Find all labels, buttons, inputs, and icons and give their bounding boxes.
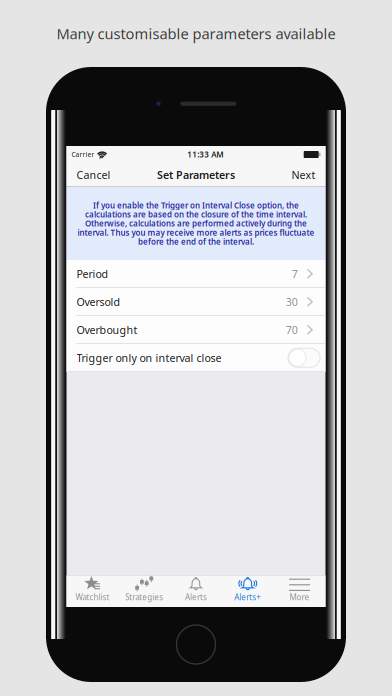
staticText: Watchlist (75, 592, 109, 602)
staticText: Alerts (185, 592, 207, 602)
staticText: 7 (292, 267, 298, 281)
button[interactable]: Next (284, 163, 322, 186)
button[interactable]: Period (66, 260, 325, 288)
staticText: Set Parameters (157, 168, 235, 182)
staticText: Many customisable parameters available (56, 24, 335, 43)
staticText: Overbought (76, 323, 137, 337)
button[interactable]: Oversold (66, 288, 325, 316)
staticText: Oversold (76, 295, 120, 309)
staticText: calculations are based on the closure of… (85, 209, 307, 220)
staticText: More (290, 592, 310, 602)
button[interactable]: Trigger only on interval close (288, 348, 320, 367)
staticText: Next (291, 168, 315, 182)
staticText: 11:33 AM (187, 149, 223, 160)
staticText: Carrier (71, 150, 94, 159)
button[interactable]: Cancel (69, 163, 117, 186)
staticText: If you enable the Trigger on Interval Cl… (93, 200, 299, 211)
staticText: Period (76, 267, 108, 281)
button[interactable]: Strategies (118, 575, 170, 607)
staticText: interval. Thus you may receive more aler… (77, 227, 314, 238)
button[interactable]: Alerts (170, 575, 222, 607)
button[interactable]: More (274, 575, 325, 607)
staticText: before the end of the interval. (138, 236, 254, 247)
button[interactable]: Watchlist (66, 575, 118, 607)
staticText: 70 (286, 323, 298, 337)
staticText: Cancel (76, 168, 110, 182)
staticText: Strategies (125, 592, 163, 602)
staticText: Trigger only on interval close (76, 351, 221, 365)
staticText: Alerts+ (234, 592, 261, 602)
button[interactable]: Alerts+ (222, 575, 274, 607)
button[interactable]: Overbought (66, 316, 325, 344)
staticText: Otherwise, calculations are performed ac… (85, 218, 307, 229)
staticText: 30 (286, 295, 298, 309)
